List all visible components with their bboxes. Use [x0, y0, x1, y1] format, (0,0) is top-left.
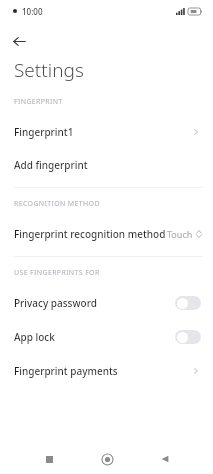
staticText: Add fingerprint — [14, 158, 88, 172]
staticText: Fingerprint recognition method — [14, 227, 166, 241]
staticText: Settings — [14, 57, 84, 83]
button[interactable]: App lock — [0, 321, 213, 352]
button[interactable]: Fingerprint recognition method — [0, 218, 213, 249]
staticText: RECOGNITION METHOD — [14, 199, 100, 209]
button[interactable]: Fingerprint payments — [0, 355, 213, 386]
staticText: Fingerprint payments — [14, 364, 118, 378]
button[interactable]: Back — [8, 30, 30, 52]
staticText: Fingerprint1 — [14, 125, 74, 139]
button[interactable]: Fingerprint1 — [0, 116, 213, 147]
button[interactable]: Home — [89, 444, 125, 474]
staticText: USE FINGERPRINTS FOR — [14, 268, 100, 278]
staticText: App lock — [14, 330, 55, 344]
staticText: FINGERPRINT — [14, 97, 63, 107]
staticText: Privacy password — [14, 296, 97, 310]
button[interactable]: Recents — [31, 444, 67, 474]
button[interactable]: Back — [147, 444, 183, 474]
button[interactable]: Add fingerprint — [0, 149, 213, 180]
staticText: Touch — [167, 228, 193, 240]
staticText: 10:00 — [22, 6, 43, 17]
button[interactable]: Privacy password — [0, 287, 213, 318]
